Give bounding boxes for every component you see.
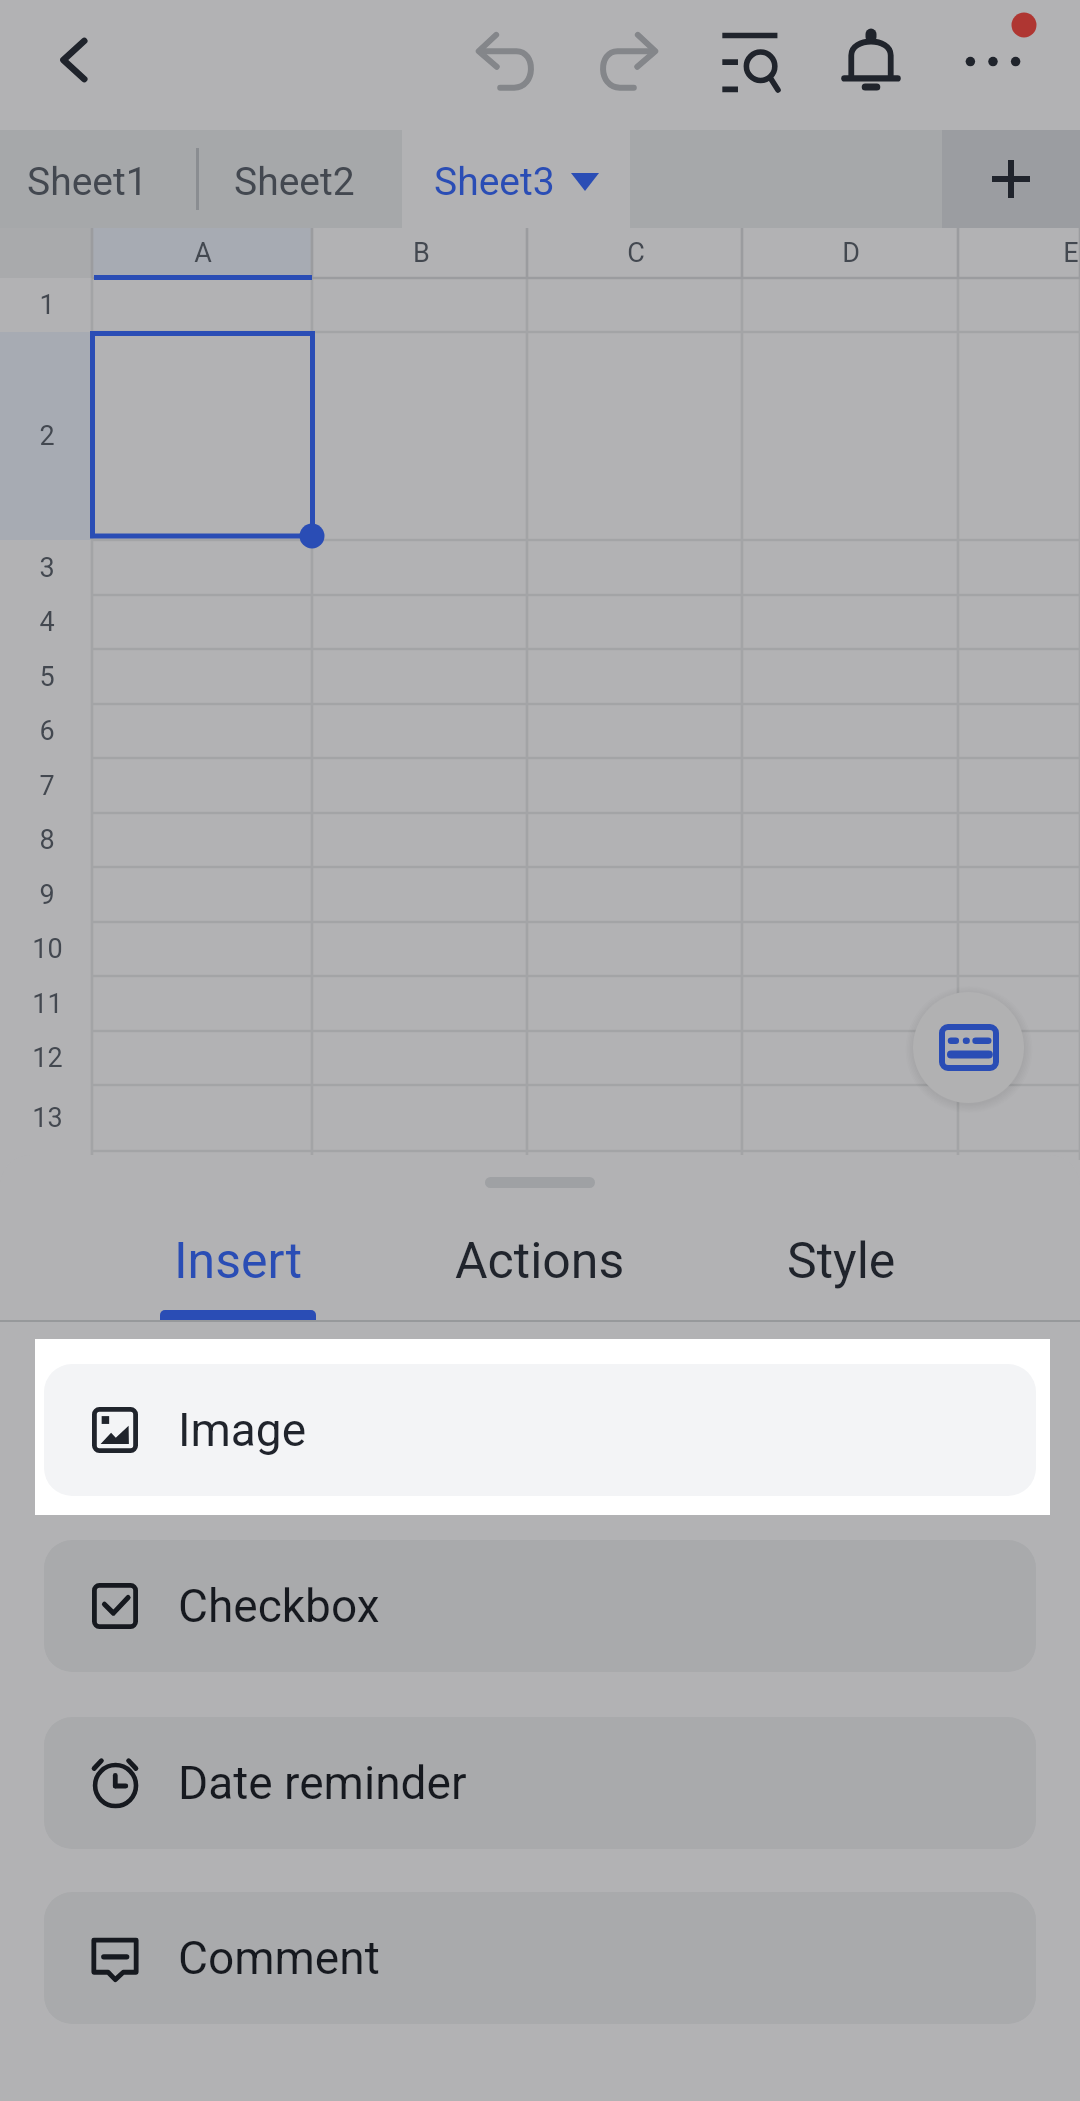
staticText: Image (178, 1403, 307, 1457)
staticText: Sheet3 (434, 159, 555, 205)
staticText: 7 (39, 770, 55, 802)
staticText: 4 (39, 606, 55, 638)
staticText: Sheet1 (27, 159, 148, 205)
staticText: Comment (178, 1931, 380, 1985)
staticText: C (627, 237, 645, 269)
button[interactable]: Notifications (821, 11, 921, 111)
button[interactable]: More options (943, 11, 1043, 111)
button[interactable]: Image (44, 1364, 1036, 1496)
staticText: 5 (39, 661, 55, 693)
button[interactable]: Redo (578, 11, 678, 111)
button[interactable]: Sheet3 (402, 130, 630, 228)
staticText: 1 (39, 289, 55, 321)
staticText: 3 (39, 552, 55, 584)
button[interactable]: Insert (78, 1202, 398, 1320)
button[interactable]: Date reminder (44, 1717, 1036, 1849)
staticText: 11 (32, 988, 63, 1020)
staticText: 8 (39, 824, 55, 856)
staticText: B (413, 237, 430, 269)
staticText: 9 (39, 879, 55, 911)
staticText: 2 (39, 420, 55, 452)
button[interactable]: Comment (44, 1892, 1036, 2024)
button[interactable]: Back (25, 10, 125, 110)
button[interactable]: Sheet2 (200, 130, 388, 228)
staticText: 10 (32, 933, 63, 965)
staticText: Date reminder (178, 1756, 467, 1810)
staticText: A (194, 237, 212, 269)
staticText: Actions (455, 1232, 625, 1291)
button[interactable]: Style (681, 1202, 1001, 1320)
staticText: D (842, 237, 860, 269)
button[interactable]: Undo (456, 11, 556, 111)
staticText: 13 (32, 1102, 63, 1134)
staticText: Style (787, 1232, 896, 1291)
button[interactable]: Find and replace (699, 11, 799, 111)
button[interactable]: Actions (380, 1202, 700, 1320)
staticText: Insert (174, 1232, 303, 1291)
staticText: Checkbox (178, 1579, 380, 1633)
button[interactable]: Sheet1 (0, 130, 174, 228)
button[interactable]: Show keyboard (913, 992, 1024, 1103)
button[interactable]: Add sheet (942, 130, 1080, 228)
staticText: E (1063, 237, 1079, 269)
staticText: 6 (39, 715, 55, 747)
button[interactable]: Checkbox (44, 1540, 1036, 1672)
staticText: 12 (32, 1042, 63, 1074)
staticText: Sheet2 (234, 159, 355, 205)
